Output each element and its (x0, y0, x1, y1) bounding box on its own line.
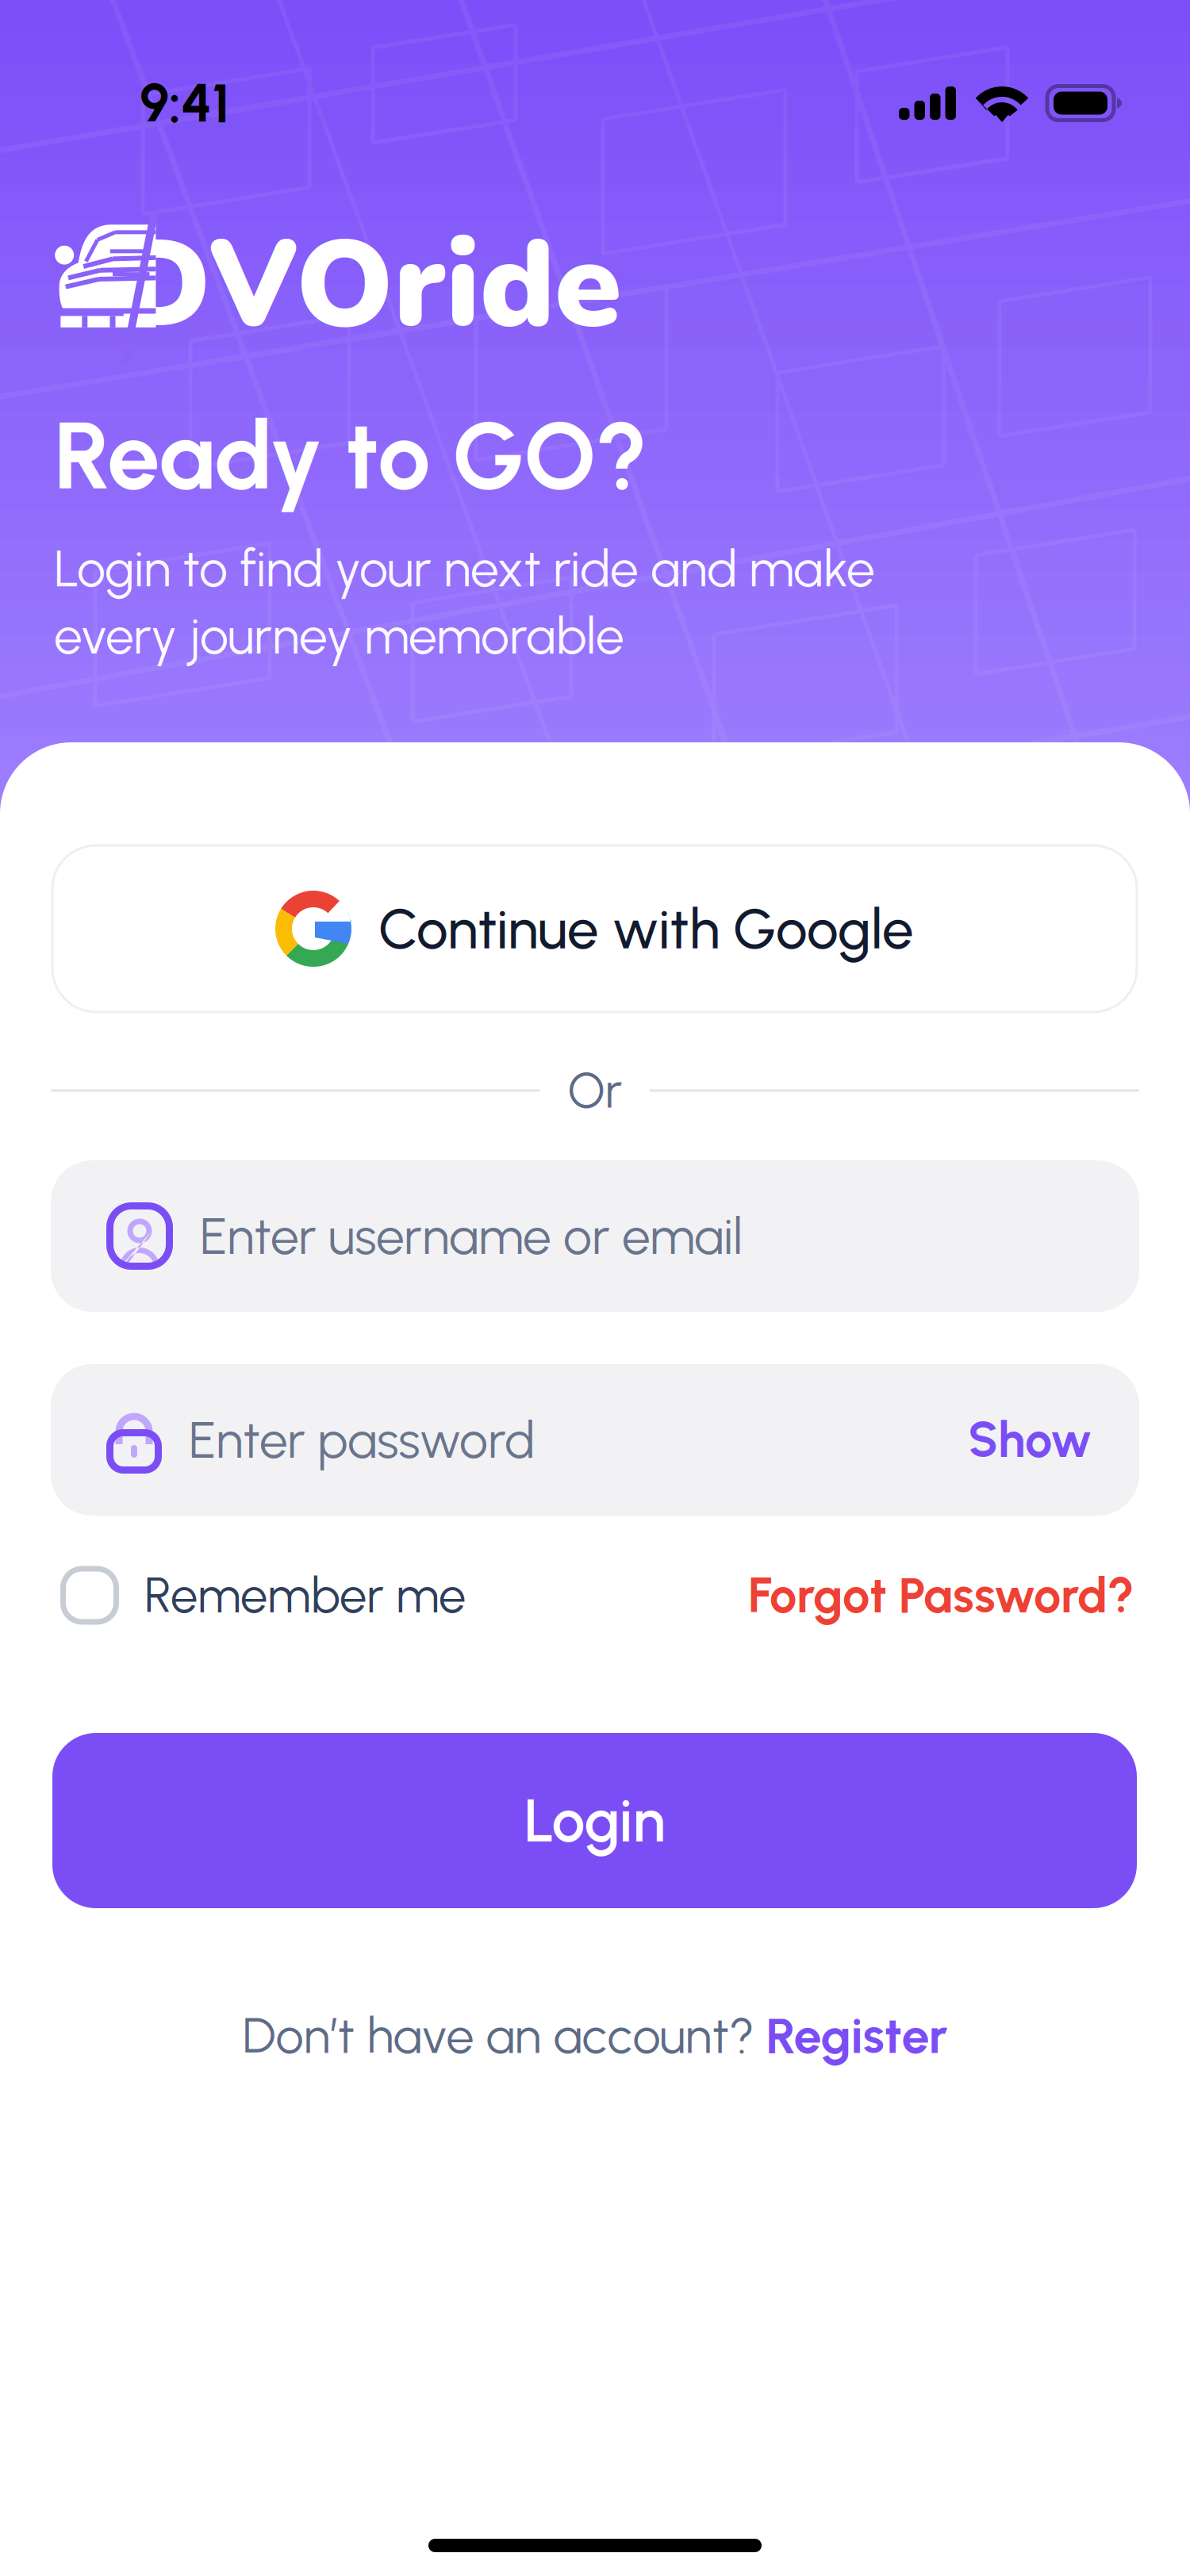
staticText: 9:41 (140, 71, 229, 135)
button[interactable]: Forgot Password? (742, 1560, 1141, 1631)
button[interactable]: Don’t have an account? (242, 2006, 948, 2065)
staticText: Remember me (144, 1566, 466, 1625)
staticText: Ready to GO? (54, 399, 648, 512)
staticText: Continue with Google (378, 895, 914, 962)
staticText: Forgot Password? (748, 1566, 1134, 1625)
staticText: Login to find your next ride and make (54, 538, 875, 599)
staticText: Register (766, 2006, 948, 2065)
button[interactable]: Continue with Google (52, 845, 1137, 1012)
button[interactable]: Login (52, 1733, 1137, 1908)
staticText: Enter password (189, 1409, 535, 1470)
staticText: Enter username or email (200, 1206, 743, 1267)
button[interactable]: Remember me (54, 1560, 472, 1631)
staticText: Login (524, 1785, 665, 1856)
button[interactable]: Show (968, 1411, 1092, 1469)
staticText: Or (568, 1061, 622, 1120)
staticText: every journey memorable (54, 605, 624, 666)
staticText: DVOride (116, 203, 621, 368)
staticText: Show (968, 1411, 1092, 1469)
staticText: Don’t have an account? (242, 2006, 766, 2065)
